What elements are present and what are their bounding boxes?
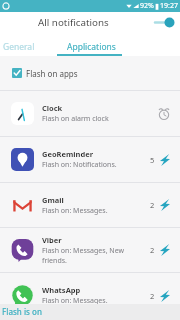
staticText: Gmail bbox=[42, 195, 64, 205]
staticText: Flash is on bbox=[2, 306, 42, 317]
staticText: 5 bbox=[150, 155, 155, 165]
button[interactable]: Viber bbox=[0, 228, 180, 272]
staticText: Applications bbox=[67, 41, 116, 53]
staticText: GeoReminder bbox=[42, 149, 93, 159]
button[interactable]: Applications bbox=[59, 33, 124, 54]
staticText: Flash on alarm clock bbox=[42, 114, 109, 124]
staticText: All notifications bbox=[38, 16, 109, 29]
button[interactable]: Gmail bbox=[0, 183, 180, 227]
staticText: friends. bbox=[42, 256, 67, 266]
button[interactable]: WhatsApp bbox=[0, 273, 180, 318]
staticText: Flash on apps bbox=[26, 68, 78, 79]
staticText: WhatsApp bbox=[42, 285, 81, 295]
staticText: 2 bbox=[150, 245, 155, 255]
staticText: Viber bbox=[42, 235, 62, 245]
button[interactable]: General bbox=[1, 33, 37, 54]
staticText: 2 bbox=[150, 291, 155, 301]
button[interactable]: GeoReminder bbox=[0, 137, 180, 182]
button[interactable]: Flash on apps bbox=[0, 56, 180, 90]
staticText: Flash on: Messages. bbox=[42, 296, 108, 306]
staticText: Flash on: Messages, New bbox=[42, 246, 124, 256]
staticText: 19:27 bbox=[160, 1, 178, 11]
staticText: Flash on: Messages. bbox=[42, 206, 108, 216]
staticText: 92% bbox=[140, 1, 154, 11]
button[interactable]: Toggle all notifications bbox=[150, 12, 180, 33]
staticText: 2 bbox=[150, 200, 155, 210]
staticText: Flash on: Notifications. bbox=[42, 160, 117, 170]
staticText: Clock bbox=[42, 103, 63, 113]
staticText: General bbox=[3, 41, 35, 53]
button[interactable]: Clock bbox=[0, 91, 180, 136]
